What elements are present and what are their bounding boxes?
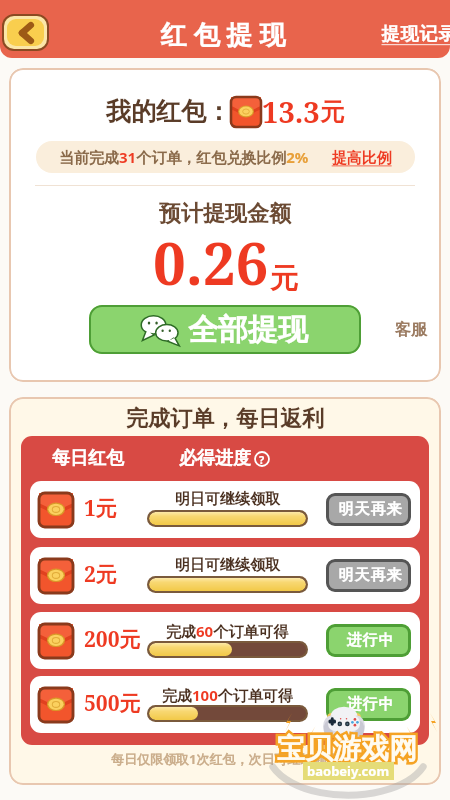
button[interactable]: 进行中	[326, 624, 411, 657]
staticText: 2元	[84, 560, 117, 589]
staticText: ?	[259, 452, 265, 467]
button[interactable]: 明天再来	[326, 559, 411, 592]
staticText: 每日红包	[52, 447, 124, 470]
button[interactable]: 客服	[395, 320, 427, 340]
staticText: 完成订单，每日返利	[126, 405, 324, 433]
button[interactable]: 提现记录	[381, 23, 450, 46]
staticText: 明日可继续领取	[175, 556, 280, 575]
staticText: 当前完成31个订单，红包兑换比例2% 提高比例	[59, 147, 392, 167]
staticText: 每日仅限领取1次红包，次日可继续领取	[111, 750, 340, 768]
button[interactable]: 进行中	[326, 688, 411, 721]
staticText: 宝贝游戏网	[277, 731, 417, 766]
staticText: 预计提现金额	[159, 200, 291, 228]
staticText: 0.26	[153, 223, 269, 302]
staticText: 500元	[84, 689, 141, 718]
staticText: 元	[270, 261, 298, 296]
staticText: baobeiy.com	[307, 762, 390, 780]
button[interactable]: 2元	[30, 547, 420, 604]
staticText: 完成60个订单可得	[166, 621, 289, 641]
button[interactable]: 200元	[30, 612, 420, 669]
staticText: 元	[320, 97, 344, 127]
button[interactable]: 全部提现	[89, 305, 361, 354]
staticText: 明天再来	[338, 566, 402, 585]
staticText: 完成100个订单可得	[162, 685, 293, 705]
staticText: 明天再来	[338, 500, 402, 519]
staticText: 进行中	[346, 695, 394, 714]
staticText: 必得进度	[179, 447, 251, 470]
staticText: 红包提现	[157, 19, 289, 52]
staticText: 客服	[395, 320, 427, 340]
button[interactable]: 1元	[30, 481, 420, 538]
button[interactable]: Back	[7, 19, 44, 46]
staticText: 13.3	[262, 92, 320, 131]
staticText: 1元	[84, 494, 117, 523]
staticText: 全部提现	[188, 311, 308, 349]
staticText: 进行中	[346, 631, 394, 650]
staticText: 提现记录	[381, 23, 450, 46]
staticText: 我的红包：	[106, 96, 231, 127]
button[interactable]: 明天再来	[326, 493, 411, 526]
staticText: 明日可继续领取	[175, 490, 280, 509]
staticText: 宝贝游戏网	[277, 731, 417, 766]
staticText: 200元	[84, 625, 141, 654]
button[interactable]: 500元	[30, 676, 420, 733]
